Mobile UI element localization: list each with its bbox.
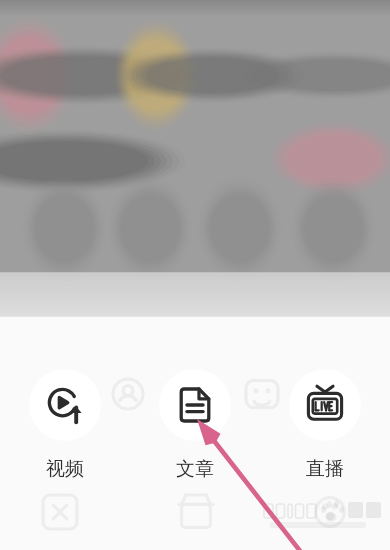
button[interactable]: 视频 (0, 369, 130, 481)
button[interactable]: 文章 (130, 369, 260, 481)
staticText: 文章 (176, 457, 214, 481)
staticText: 直播 (306, 457, 344, 481)
staticText: 视频 (46, 457, 84, 481)
button[interactable]: 直播 (260, 369, 390, 481)
